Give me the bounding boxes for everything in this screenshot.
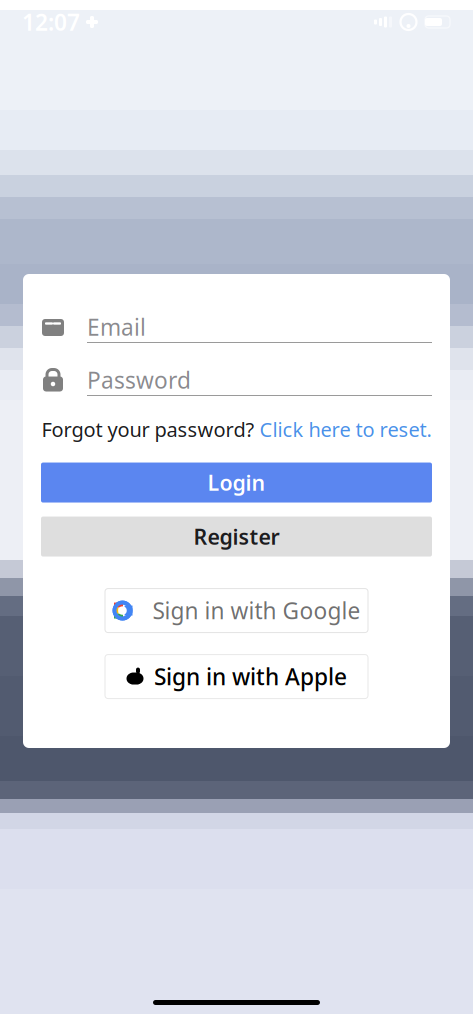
staticText: 12:07 xyxy=(22,7,80,37)
button[interactable]: Login xyxy=(41,463,432,503)
button[interactable]: Sign in with Apple xyxy=(105,655,368,699)
button[interactable]: Sign in with Google xyxy=(105,589,368,633)
staticText: Register xyxy=(193,522,279,551)
staticText: Email xyxy=(87,312,146,342)
staticText: Login xyxy=(207,468,265,497)
staticText: Sign in with Google xyxy=(152,595,360,626)
button[interactable]: Forgot your password? xyxy=(23,410,450,449)
button[interactable]: Register xyxy=(41,517,432,557)
staticText: Password xyxy=(87,365,191,395)
staticText: Forgot your password? xyxy=(41,416,259,443)
staticText: Click here to reset. xyxy=(259,416,431,443)
staticText: Sign in with Apple xyxy=(154,661,347,692)
